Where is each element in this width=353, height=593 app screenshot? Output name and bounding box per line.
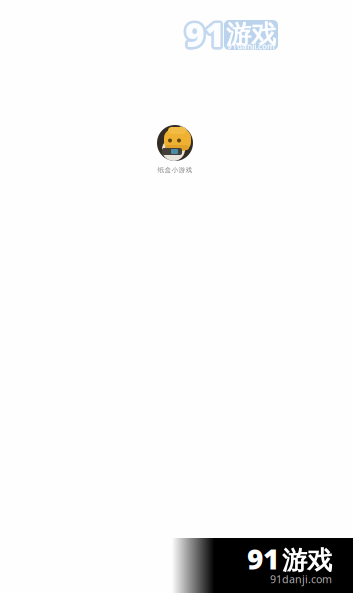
staticText: 91 [186,10,226,54]
staticText: 91 [187,10,227,55]
staticText: 91 [185,10,225,54]
staticText: 游戏 [226,19,276,50]
button[interactable]: 纸盒小游戏 [140,125,210,174]
staticText: 91 [247,540,279,577]
staticText: 91 [183,10,223,55]
staticText: 91 [186,14,226,58]
staticText: 91 [187,12,227,56]
staticText: 91 [187,13,227,57]
staticText: 91 [183,12,223,56]
staticText: 91danji.com [227,41,275,52]
staticText: 91danji.com [270,572,332,586]
staticText: 91 [187,14,227,58]
staticText: 91 [183,14,223,58]
staticText: 91 [184,10,224,54]
staticText: 游戏 [282,545,332,576]
staticText: 91 [185,12,225,56]
staticText: 91 [185,14,225,59]
staticText: 91 [184,14,224,58]
staticText: 91 [183,11,223,55]
staticText: 91 [187,11,227,55]
staticText: 91 [183,13,223,57]
staticText: 纸盒小游戏 [157,166,192,174]
